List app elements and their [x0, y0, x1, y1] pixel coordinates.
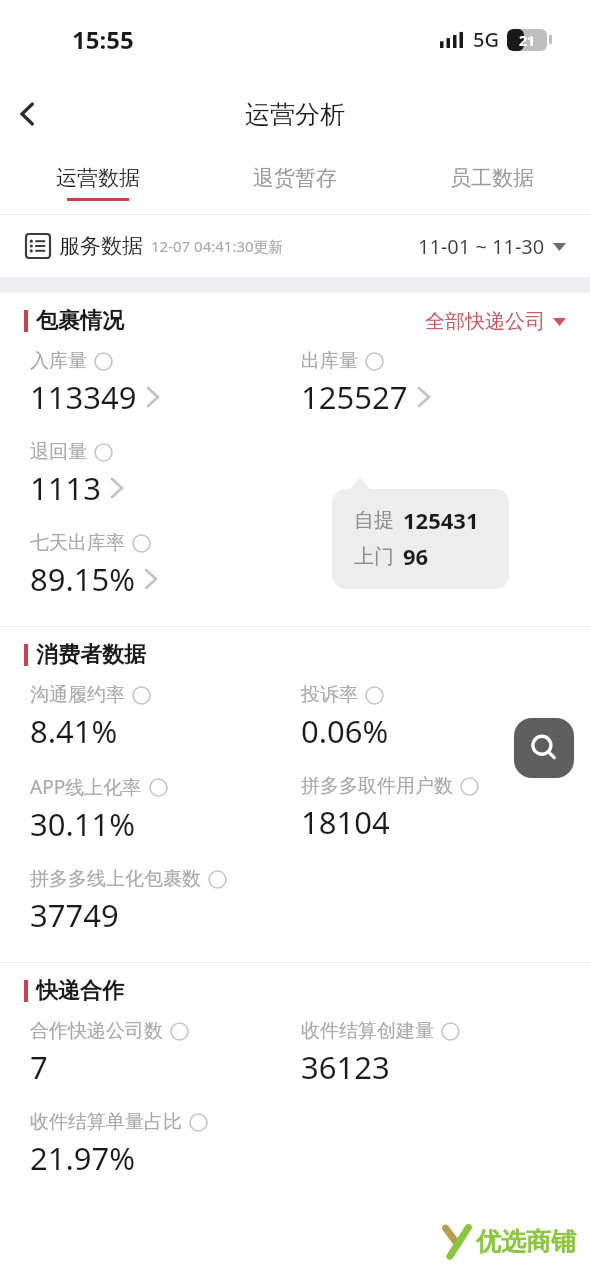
staticText: 收件结算单量占比 — [30, 1110, 182, 1134]
button[interactable]: 沟通履约率 — [30, 683, 301, 752]
staticText: 12-07 04:41:30更新 — [151, 236, 284, 256]
staticText: 合作快递公司数 — [30, 1019, 163, 1043]
button[interactable]: 运营数据 — [0, 150, 196, 215]
staticText: 96 — [403, 541, 429, 571]
staticText: 113349 — [30, 376, 137, 418]
staticText: 收件结算创建量 — [301, 1019, 434, 1043]
staticText: 7 — [30, 1046, 48, 1088]
staticText: 1113 — [30, 467, 101, 509]
staticText: 36123 — [301, 1046, 390, 1088]
staticText: 退货暂存 — [253, 165, 337, 191]
button[interactable]: 退货暂存 — [196, 150, 393, 215]
staticText: 拼多多线上化包裹数 — [30, 867, 201, 891]
staticText: 上门 — [354, 544, 394, 569]
staticText: 21.97% — [30, 1137, 135, 1179]
staticText: 七天出库率 — [30, 531, 125, 555]
staticText: 125527 — [301, 376, 408, 418]
staticText: 5G — [473, 26, 499, 53]
staticText: 运营数据 — [56, 165, 140, 191]
button[interactable]: Search — [514, 718, 574, 778]
staticText: 包裹情况 — [36, 307, 124, 335]
button[interactable]: 收件结算创建量 — [301, 1019, 460, 1088]
button[interactable]: 投诉率 — [301, 683, 389, 752]
staticText: 出库量 — [301, 349, 358, 373]
staticText: APP线上化率 — [30, 774, 142, 800]
staticText: 拼多多取件用户数 — [301, 774, 453, 798]
staticText: 18104 — [301, 801, 390, 843]
button[interactable]: 入库量 — [30, 349, 301, 418]
button[interactable]: 拼多多线上化包裹数 — [30, 867, 301, 936]
staticText: 37749 — [30, 894, 119, 936]
staticText: 消费者数据 — [36, 641, 146, 669]
button[interactable]: 合作快递公司数 — [30, 1019, 301, 1088]
staticText: 快递合作 — [36, 977, 124, 1005]
staticText: 21 — [519, 31, 536, 50]
button[interactable]: 退回量 — [30, 440, 301, 509]
button[interactable]: 员工数据 — [393, 150, 590, 215]
staticText: 优选商铺 — [476, 1226, 576, 1257]
button[interactable]: 全部快递公司 — [425, 309, 566, 334]
button[interactable]: Back — [0, 86, 56, 142]
staticText: 全部快递公司 — [425, 309, 545, 334]
button[interactable]: 11-01 ~ 11-30 — [418, 233, 566, 260]
staticText: 运营分析 — [245, 99, 345, 130]
staticText: 投诉率 — [301, 683, 358, 707]
staticText: 退回量 — [30, 440, 87, 464]
button[interactable]: 出库量 — [301, 349, 430, 418]
staticText: 入库量 — [30, 349, 87, 373]
staticText: 125431 — [403, 505, 479, 535]
button[interactable]: 拼多多取件用户数 — [301, 774, 479, 843]
staticText: 0.06% — [301, 710, 389, 752]
staticText: 服务数据 — [59, 233, 143, 259]
button[interactable]: 收件结算单量占比 — [30, 1110, 301, 1179]
staticText: 沟通履约率 — [30, 683, 125, 707]
button[interactable]: 七天出库率 — [30, 531, 301, 600]
staticText: 15:55 — [72, 23, 134, 56]
staticText: 8.41% — [30, 710, 118, 752]
button[interactable]: APP线上化率 — [30, 774, 301, 845]
staticText: 自提 — [354, 508, 394, 533]
staticText: 员工数据 — [450, 165, 534, 191]
staticText: 89.15% — [30, 558, 135, 600]
staticText: 30.11% — [30, 803, 135, 845]
staticText: 11-01 ~ 11-30 — [418, 233, 545, 260]
